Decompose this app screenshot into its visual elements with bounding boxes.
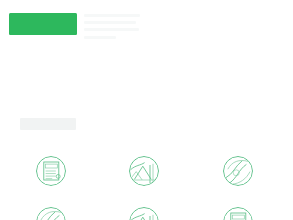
- button[interactable]: Documents: [36, 156, 66, 186]
- button[interactable]: Nature: [223, 156, 253, 186]
- button[interactable]: Primary action: [9, 13, 77, 35]
- button[interactable]: Category five: [129, 207, 159, 220]
- button[interactable]: Landscape: [129, 156, 159, 186]
- button[interactable]: Category four: [36, 207, 66, 220]
- button[interactable]: Category six: [223, 207, 253, 220]
